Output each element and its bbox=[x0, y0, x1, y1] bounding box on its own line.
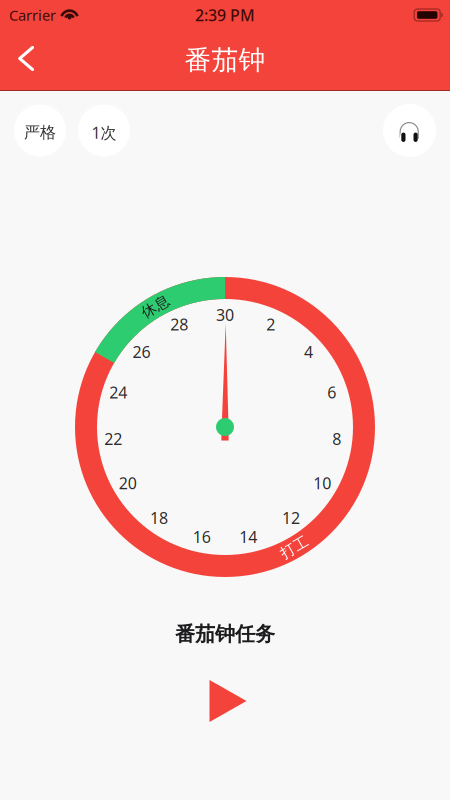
staticText: 番茄钟 bbox=[184, 44, 265, 76]
staticText: 14 bbox=[239, 526, 257, 547]
button[interactable]: Back bbox=[0, 33, 52, 83]
staticText: 6 bbox=[327, 382, 336, 403]
staticText: 30 bbox=[216, 304, 234, 325]
staticText: 打工 bbox=[279, 538, 309, 556]
button[interactable]: 1次 bbox=[78, 104, 130, 156]
staticText: 28 bbox=[170, 314, 188, 335]
button[interactable]: 严格 bbox=[14, 104, 66, 156]
staticText: 10 bbox=[313, 472, 331, 494]
staticText: 12 bbox=[282, 507, 300, 528]
staticText: 4 bbox=[304, 341, 313, 362]
staticText: 20 bbox=[119, 472, 137, 494]
staticText: 2 bbox=[266, 314, 275, 335]
staticText: 22 bbox=[104, 428, 122, 449]
staticText: 26 bbox=[132, 341, 150, 362]
staticText: 16 bbox=[193, 526, 211, 547]
staticText: 1次 bbox=[91, 122, 116, 143]
button[interactable]: Sound bbox=[383, 104, 436, 157]
staticText: 24 bbox=[109, 382, 127, 403]
staticText: 2:39 PM bbox=[195, 4, 255, 26]
staticText: 休息 bbox=[140, 298, 170, 316]
button[interactable]: Start bbox=[199, 670, 256, 732]
staticText: 18 bbox=[150, 507, 168, 528]
staticText: 番茄钟任务 bbox=[175, 622, 275, 646]
staticText: 严格 bbox=[24, 123, 56, 142]
staticText: 8 bbox=[332, 428, 341, 449]
staticText: Carrier bbox=[9, 5, 56, 25]
